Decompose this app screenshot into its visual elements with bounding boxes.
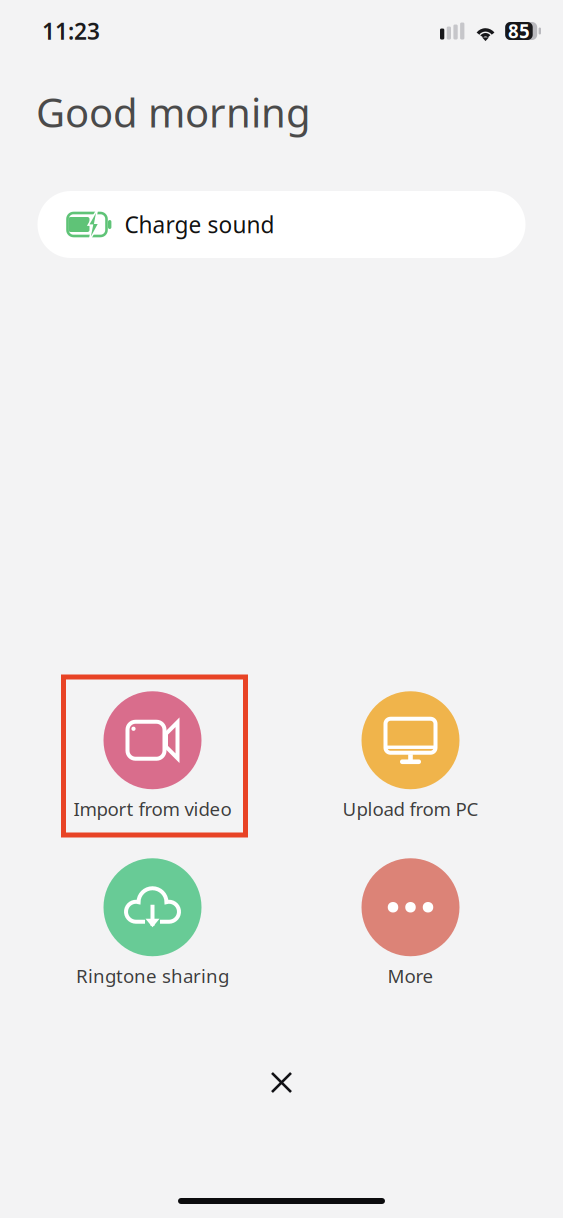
staticText: 11:23 bbox=[42, 16, 100, 46]
button[interactable]: Charge sound bbox=[37, 191, 525, 258]
staticText: 85 bbox=[508, 19, 530, 43]
button[interactable]: Upload from PC bbox=[295, 687, 525, 827]
staticText: Charge sound bbox=[124, 209, 274, 239]
staticText: Ringtone sharing bbox=[76, 963, 229, 988]
button[interactable]: Ringtone sharing bbox=[37, 854, 267, 994]
staticText: More bbox=[387, 963, 433, 988]
button[interactable]: More bbox=[295, 854, 525, 994]
button[interactable]: Close bbox=[256, 1057, 307, 1108]
button[interactable]: Import from video bbox=[37, 687, 267, 827]
staticText: Upload from PC bbox=[342, 796, 478, 821]
staticText: Import from video bbox=[73, 796, 231, 821]
staticText: Good morning bbox=[36, 85, 311, 138]
